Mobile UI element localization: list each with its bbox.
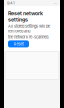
staticText: Reset — [13, 41, 23, 46]
staticText: All stored settings will be removed and — [8, 24, 50, 34]
staticText: 9:41 — [7, 1, 15, 5]
button[interactable]: Reset — [8, 40, 29, 47]
staticText: the network re-scanned. — [8, 35, 49, 39]
staticText: ··· — [54, 1, 57, 5]
staticText: Reset network settings — [8, 10, 43, 23]
